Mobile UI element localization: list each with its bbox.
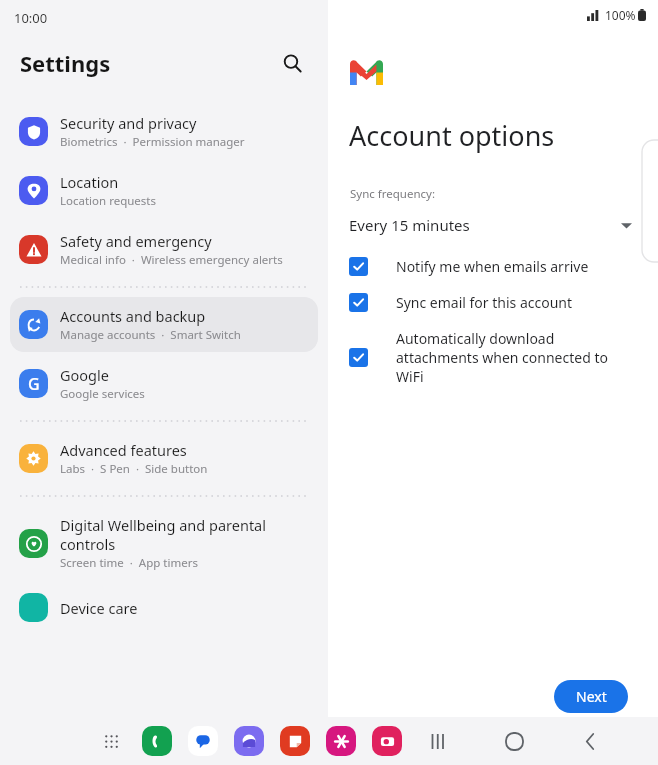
button[interactable]: Phone (142, 726, 172, 756)
staticText: Sync email for this account (396, 293, 573, 312)
staticText: Next (576, 687, 607, 706)
staticText: 100% (605, 7, 636, 23)
button[interactable]: Safety and emergency (10, 222, 318, 277)
button[interactable]: Location (10, 163, 318, 218)
button[interactable]: Search (274, 45, 310, 81)
button[interactable]: Accounts and backup (10, 297, 318, 352)
staticText: Digital Wellbeing and parental controls (60, 515, 266, 554)
staticText: Account options (349, 117, 555, 154)
staticText: Location requests (60, 193, 156, 209)
staticText: Accounts and backup (60, 306, 206, 326)
button[interactable]: Apps (96, 726, 126, 756)
button[interactable]: Gallery (326, 726, 356, 756)
staticText: Google services (60, 386, 145, 402)
staticText: Notify me when emails arrive (396, 257, 589, 276)
button[interactable]: Next (554, 680, 628, 713)
staticText: Biometrics · Permission manager (60, 134, 245, 150)
staticText: Manage accounts · Smart Switch (60, 327, 241, 343)
staticText: Medical info · Wireless emergency alerts (60, 252, 283, 268)
staticText: Advanced features (60, 440, 187, 460)
staticText: Location (60, 172, 119, 192)
staticText: Automatically download attachments when … (396, 329, 608, 386)
staticText: Sync frequency: (350, 186, 435, 202)
button[interactable]: Digital Wellbeing and parental controls (10, 506, 318, 580)
staticText: Device care (60, 598, 138, 618)
staticText: Every 15 minutes (349, 215, 470, 235)
button[interactable]: Every 15 minutes (349, 215, 632, 235)
staticText: Security and privacy (60, 113, 197, 133)
button[interactable]: Device care (10, 584, 318, 631)
button[interactable]: Back (574, 725, 606, 757)
button[interactable]: Sync email for this account (349, 293, 638, 312)
staticText: Labs · S Pen · Side button (60, 461, 208, 477)
button[interactable]: Automatically download attachments when … (349, 329, 638, 386)
staticText: G (28, 373, 40, 395)
staticText: Safety and emergency (60, 231, 212, 251)
button[interactable]: Recents (422, 725, 454, 757)
staticText: Screen time · App timers (60, 555, 198, 571)
button[interactable]: Camera (372, 726, 402, 756)
button[interactable]: Messages (188, 726, 218, 756)
staticText: 10:00 (14, 9, 48, 27)
button[interactable]: Internet (234, 726, 264, 756)
button[interactable]: Notes (280, 726, 310, 756)
button[interactable]: Home (498, 725, 530, 757)
button[interactable]: Security and privacy (10, 104, 318, 159)
button[interactable]: G (10, 356, 318, 411)
staticText: Settings (20, 48, 111, 78)
staticText: Google (60, 365, 109, 385)
button[interactable]: Advanced features (10, 431, 318, 486)
button[interactable]: Notify me when emails arrive (349, 257, 638, 276)
